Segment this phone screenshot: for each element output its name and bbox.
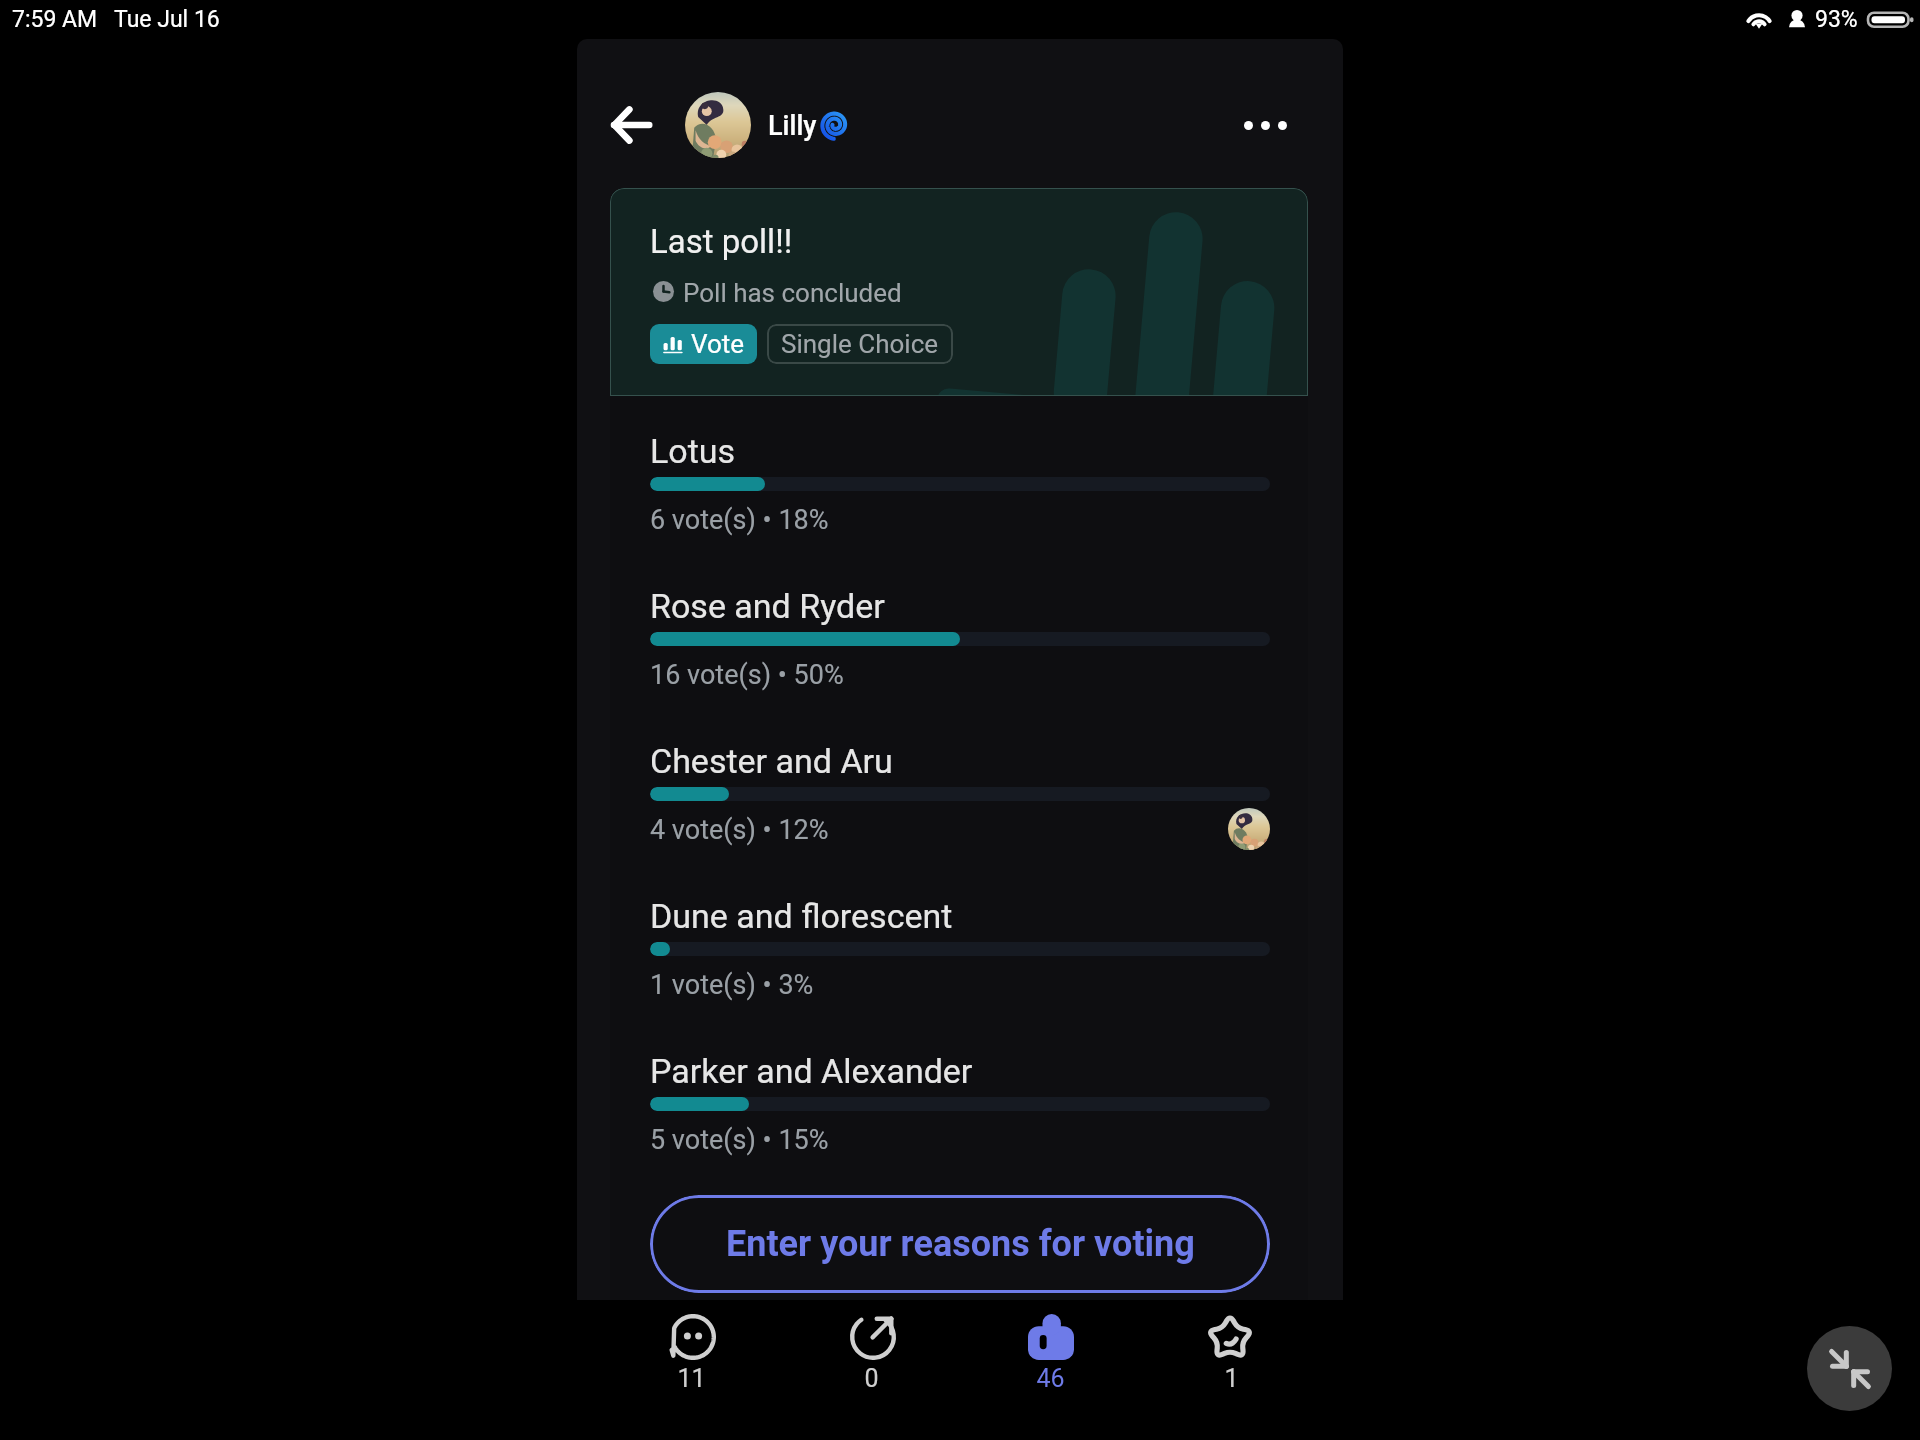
staticText: Rose and Ryder: [650, 586, 885, 626]
staticText: 11: [677, 1364, 706, 1393]
button[interactable]: Like: [1005, 1300, 1095, 1394]
staticText: Lilly: [768, 110, 817, 142]
staticText: 16 vote(s) • 50%: [650, 659, 844, 691]
button[interactable]: Chester and Aru: [650, 732, 1270, 852]
button[interactable]: Parker and Alexander: [650, 1042, 1270, 1162]
button[interactable]: Favorite: [1186, 1300, 1276, 1394]
staticText: 4 vote(s) • 12%: [650, 814, 829, 846]
staticText: Poll has concluded: [683, 278, 902, 308]
staticText: Parker and Alexander: [650, 1051, 973, 1091]
staticText: Last poll!!: [650, 222, 793, 261]
staticText: 93%: [1815, 6, 1858, 33]
staticText: Chester and Aru: [650, 741, 893, 781]
button[interactable]: Back: [602, 96, 660, 154]
button[interactable]: More options: [1235, 95, 1295, 155]
staticText: 5 vote(s) • 15%: [650, 1124, 829, 1156]
button[interactable]: Collapse: [1807, 1326, 1892, 1411]
staticText: Vote: [691, 329, 745, 359]
button[interactable]: Single Choice: [767, 324, 953, 364]
staticText: 0: [864, 1364, 879, 1393]
staticText: 1: [1224, 1364, 1239, 1393]
staticText: Lotus: [650, 431, 736, 471]
staticText: Dune and florescent: [650, 896, 953, 936]
staticText: 1 vote(s) • 3%: [650, 969, 814, 1001]
button[interactable]: Dune and florescent: [650, 887, 1270, 1007]
staticText: Enter your reasons for voting: [726, 1223, 1195, 1265]
staticText: Single Choice: [781, 329, 939, 359]
button[interactable]: Enter your reasons for voting: [650, 1195, 1270, 1293]
button[interactable]: Comments: [646, 1300, 736, 1394]
staticText: 7:59 AM: [12, 6, 98, 33]
button[interactable]: Share: [826, 1300, 916, 1394]
button[interactable]: Vote: [650, 324, 757, 364]
button[interactable]: Rose and Ryder: [650, 577, 1270, 697]
staticText: 6 vote(s) • 18%: [650, 504, 829, 536]
staticText: Tue Jul 16: [114, 6, 220, 33]
button[interactable]: Lotus: [650, 422, 1270, 542]
staticText: 46: [1036, 1364, 1065, 1393]
